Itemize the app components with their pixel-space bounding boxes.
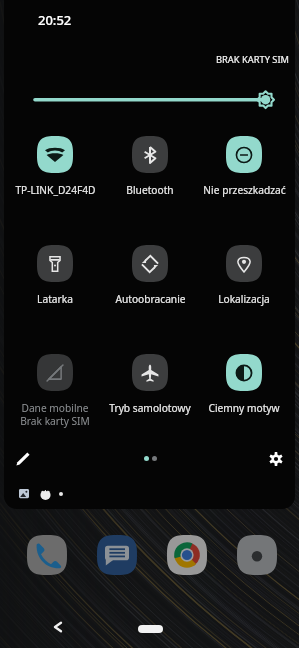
staticText: TP-LINK_D24F4D (15, 183, 96, 197)
button[interactable]: Bluetooth (103, 136, 197, 197)
staticText: 20:52 (38, 11, 72, 29)
button[interactable]: Chrome (167, 535, 207, 575)
staticText: Lokalizacja (218, 292, 270, 306)
staticText: Tryb samolotowy (109, 401, 191, 415)
staticText: Dane mobilne Brak karty SIM (20, 401, 90, 428)
button[interactable]: TP-LINK_D24F4D (8, 136, 102, 197)
button[interactable]: Edit tiles (8, 444, 38, 474)
button[interactable]: Latarka (8, 245, 102, 306)
button[interactable]: Nie przeszkadzać (197, 136, 291, 197)
button[interactable]: Autoobracanie (103, 245, 197, 306)
staticText: BRAK KARTY SIM (216, 53, 289, 66)
button[interactable]: Camera (237, 535, 277, 575)
button[interactable]: Dane mobilne Brak karty SIM (8, 354, 102, 428)
button[interactable]: Phone (27, 535, 67, 575)
staticText: Nie przeszkadzać (203, 183, 286, 197)
button[interactable]: Tryb samolotowy (103, 354, 197, 415)
staticText: Autoobracanie (115, 292, 186, 306)
button[interactable]: Messages (97, 535, 137, 575)
staticText: Bluetooth (126, 183, 174, 197)
button[interactable]: Home (138, 625, 163, 633)
button[interactable]: Settings (261, 444, 291, 474)
button[interactable]: Lokalizacja (197, 245, 291, 306)
staticText: Ciemny motyw (208, 401, 280, 415)
button[interactable]: Back (46, 615, 70, 639)
staticText: Latarka (37, 292, 73, 306)
button[interactable]: Ciemny motyw (197, 354, 291, 415)
button[interactable]: Brightness (24, 85, 289, 114)
